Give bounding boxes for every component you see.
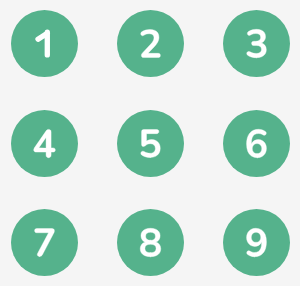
button[interactable]: Key 9 — [223, 209, 290, 276]
button[interactable]: Key 8 — [117, 209, 184, 276]
button[interactable]: Key 7 — [11, 209, 78, 276]
button[interactable]: Key 2 — [117, 10, 184, 77]
button[interactable]: Key 5 — [117, 110, 184, 177]
button[interactable]: Key 3 — [223, 10, 290, 77]
button[interactable]: Key 6 — [223, 110, 290, 177]
button[interactable]: Key 4 — [11, 110, 78, 177]
button[interactable]: Key 1 — [11, 10, 78, 77]
